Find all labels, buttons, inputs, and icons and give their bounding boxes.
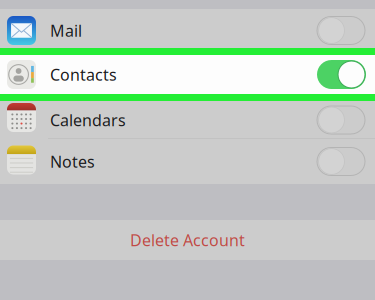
button[interactable]: Calendars bbox=[0, 101, 375, 139]
staticText: Mail bbox=[50, 20, 82, 41]
staticText: Contacts bbox=[50, 64, 117, 85]
button[interactable]: Mail bbox=[0, 9, 375, 48]
staticText: Delete Account bbox=[130, 229, 245, 251]
staticText: Calendars bbox=[50, 109, 126, 131]
staticText: Notes bbox=[50, 151, 95, 172]
button[interactable]: Contacts bbox=[0, 55, 375, 94]
button[interactable]: Notes bbox=[0, 139, 375, 184]
button[interactable]: Delete Account bbox=[0, 220, 375, 260]
